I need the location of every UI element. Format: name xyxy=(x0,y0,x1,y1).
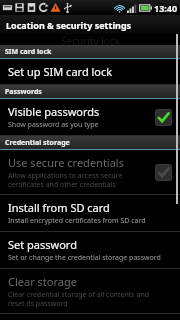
staticText: Credential storage xyxy=(5,138,70,148)
staticText: Clear storage xyxy=(8,274,77,289)
other: Toggle checkbox xyxy=(155,109,172,126)
other: Toggle checkbox xyxy=(155,164,172,181)
staticText: Passwords xyxy=(5,87,42,97)
staticText: Install from SD card xyxy=(8,200,110,215)
staticText: 13:40 xyxy=(154,2,178,14)
staticText: Set password xyxy=(8,237,77,252)
staticText: Visible passwords xyxy=(8,104,100,119)
button[interactable]: Visible passwords xyxy=(0,99,180,135)
staticText: Location & security settings xyxy=(6,19,132,31)
button[interactable]: Use secure credentials xyxy=(0,150,180,194)
staticText: Security lock xyxy=(61,34,120,45)
staticText: Show password as you type xyxy=(8,120,99,130)
staticText: Allow applications to access secure cert… xyxy=(8,171,123,189)
staticText: SIM card lock xyxy=(5,47,52,57)
button[interactable]: Set password xyxy=(0,232,180,268)
button[interactable]: Install from SD card xyxy=(0,195,180,231)
staticText: Install encrypted certificates from SD c… xyxy=(8,216,146,226)
staticText: Clear credential storage of all contents… xyxy=(8,290,150,308)
button[interactable]: Clear storage xyxy=(0,269,180,313)
staticText: Use secure credentials xyxy=(8,155,124,170)
staticText: Set or change the credential storage pas… xyxy=(8,253,161,263)
staticText: Set up SIM card lock xyxy=(8,64,113,79)
button[interactable]: Set up SIM card lock xyxy=(0,59,180,84)
